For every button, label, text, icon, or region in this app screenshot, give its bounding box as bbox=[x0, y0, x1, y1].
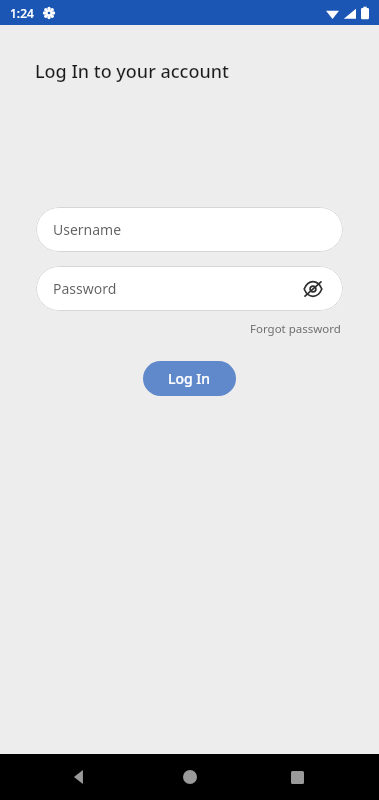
button[interactable]: Password bbox=[36, 266, 343, 311]
button[interactable]: Show password bbox=[301, 277, 325, 301]
staticText: Password bbox=[53, 279, 117, 298]
staticText: 1:24 bbox=[10, 5, 34, 21]
staticText: Log In to your account bbox=[35, 59, 229, 84]
staticText: Forgot password bbox=[250, 321, 341, 337]
button[interactable]: Forgot password bbox=[248, 319, 343, 339]
button[interactable]: Home bbox=[173, 760, 207, 794]
button[interactable]: Back bbox=[62, 760, 96, 794]
staticText: Username bbox=[53, 220, 122, 239]
button[interactable]: Log In bbox=[143, 361, 236, 396]
staticText: Log In bbox=[168, 369, 211, 388]
button[interactable]: Recent apps bbox=[280, 760, 314, 794]
button[interactable]: Username bbox=[36, 207, 343, 252]
